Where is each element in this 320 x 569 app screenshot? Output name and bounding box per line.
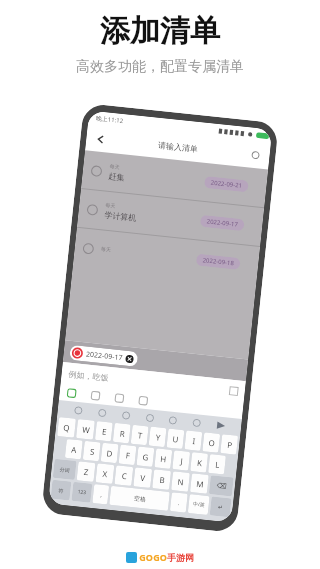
- button[interactable]: 例如，吃饭: [61, 362, 246, 403]
- staticText: C: [121, 470, 128, 481]
- button[interactable]: Q: [57, 417, 76, 438]
- button[interactable]: Key tool 5: [191, 417, 203, 429]
- staticText: .: [177, 499, 180, 507]
- button[interactable]: 每天: [73, 228, 260, 285]
- button[interactable]: J: [172, 450, 190, 471]
- staticText: 空格: [134, 494, 146, 503]
- staticText: J: [180, 455, 184, 466]
- button[interactable]: M: [190, 473, 209, 494]
- button[interactable]: .: [170, 492, 188, 513]
- button[interactable]: 每天: [77, 189, 264, 246]
- button[interactable]: Note: [137, 394, 150, 407]
- button[interactable]: B: [152, 469, 171, 490]
- button[interactable]: Z: [77, 461, 95, 482]
- staticText: G: [142, 451, 149, 463]
- button[interactable]: G: [136, 446, 154, 467]
- button[interactable]: Key tool 0: [72, 404, 84, 416]
- staticText: 手游网: [167, 552, 194, 563]
- button[interactable]: Tag: [65, 387, 78, 400]
- button[interactable]: T: [131, 425, 149, 445]
- staticText: GO: [139, 551, 153, 563]
- button[interactable]: History: [247, 146, 264, 164]
- button[interactable]: L: [208, 454, 226, 475]
- button[interactable]: 分词: [53, 459, 77, 480]
- button[interactable]: 123: [71, 482, 92, 503]
- button[interactable]: Key tool 1: [96, 407, 108, 419]
- button[interactable]: Y: [149, 427, 166, 447]
- staticText: N: [176, 476, 185, 487]
- staticText: 分词: [59, 466, 70, 473]
- staticText: 2022-09-21: [210, 179, 243, 190]
- staticText: ↵: [217, 503, 224, 511]
- button[interactable]: 2022-09-17: [69, 345, 138, 367]
- staticText: 2022-09-17: [206, 217, 239, 229]
- staticText: 每天: [101, 245, 111, 252]
- button[interactable]: Emoji: [89, 389, 102, 402]
- staticText: L: [214, 459, 221, 470]
- staticText: O: [208, 437, 216, 448]
- staticText: E: [101, 426, 107, 437]
- button[interactable]: W: [76, 419, 95, 440]
- staticText: 例如，吃饭: [68, 369, 109, 383]
- staticText: Y: [155, 431, 161, 443]
- staticText: R: [119, 427, 125, 439]
- button[interactable]: ⌫: [209, 475, 234, 496]
- staticText: 晚上11:12: [95, 114, 124, 125]
- staticText: A: [70, 443, 77, 455]
- staticText: H: [160, 453, 167, 464]
- staticText: B: [159, 474, 166, 485]
- button[interactable]: A: [65, 439, 83, 459]
- button[interactable]: P: [220, 434, 238, 455]
- button[interactable]: ,: [92, 484, 109, 504]
- button[interactable]: Key tool 3: [144, 412, 156, 424]
- staticText: T: [137, 429, 143, 441]
- button[interactable]: F: [119, 445, 136, 465]
- staticText: 学计算机: [104, 210, 137, 223]
- button[interactable]: U: [166, 428, 184, 449]
- staticText: M: [195, 478, 204, 489]
- staticText: U: [172, 433, 179, 445]
- button[interactable]: O: [202, 432, 220, 453]
- button[interactable]: 每天: [81, 150, 268, 207]
- staticText: GO: [153, 551, 167, 563]
- staticText: 2022-09-18: [202, 256, 235, 267]
- button[interactable]: Flag: [113, 392, 126, 405]
- button[interactable]: 中/英: [188, 494, 210, 515]
- button[interactable]: Back: [90, 129, 110, 149]
- button[interactable]: N: [171, 471, 190, 492]
- button[interactable]: I: [184, 430, 202, 451]
- staticText: I: [192, 435, 196, 446]
- button[interactable]: 空格: [109, 486, 170, 511]
- staticText: 符: [58, 487, 64, 494]
- button[interactable]: V: [133, 467, 152, 488]
- staticText: Z: [83, 466, 89, 477]
- staticText: 请输入清单: [158, 140, 198, 154]
- staticText: Q: [62, 421, 71, 433]
- button[interactable]: K: [190, 452, 208, 473]
- staticText: 2022-09-17: [85, 349, 123, 363]
- button[interactable]: C: [114, 465, 133, 486]
- staticText: 添加清单: [100, 12, 220, 50]
- button[interactable]: ↵: [210, 496, 232, 517]
- button[interactable]: 符: [50, 480, 71, 501]
- staticText: 每天: [109, 163, 120, 170]
- staticText: 赶集: [108, 171, 125, 182]
- button[interactable]: Key tool 6: [215, 419, 227, 431]
- button[interactable]: Key tool 4: [167, 414, 179, 426]
- button[interactable]: Key tool 2: [120, 409, 132, 421]
- staticText: ⌫: [216, 482, 227, 491]
- button[interactable]: R: [113, 423, 131, 443]
- staticText: 每天: [105, 202, 116, 209]
- button[interactable]: H: [154, 448, 172, 469]
- button[interactable]: D: [101, 443, 119, 463]
- staticText: 中/英: [192, 500, 205, 509]
- staticText: P: [227, 439, 233, 450]
- staticText: W: [81, 423, 90, 435]
- staticText: X: [102, 468, 108, 479]
- staticText: S: [89, 445, 95, 457]
- staticText: V: [140, 472, 146, 483]
- button[interactable]: S: [83, 441, 101, 461]
- button[interactable]: X: [95, 463, 114, 484]
- button[interactable]: E: [95, 421, 113, 442]
- staticText: D: [106, 447, 113, 459]
